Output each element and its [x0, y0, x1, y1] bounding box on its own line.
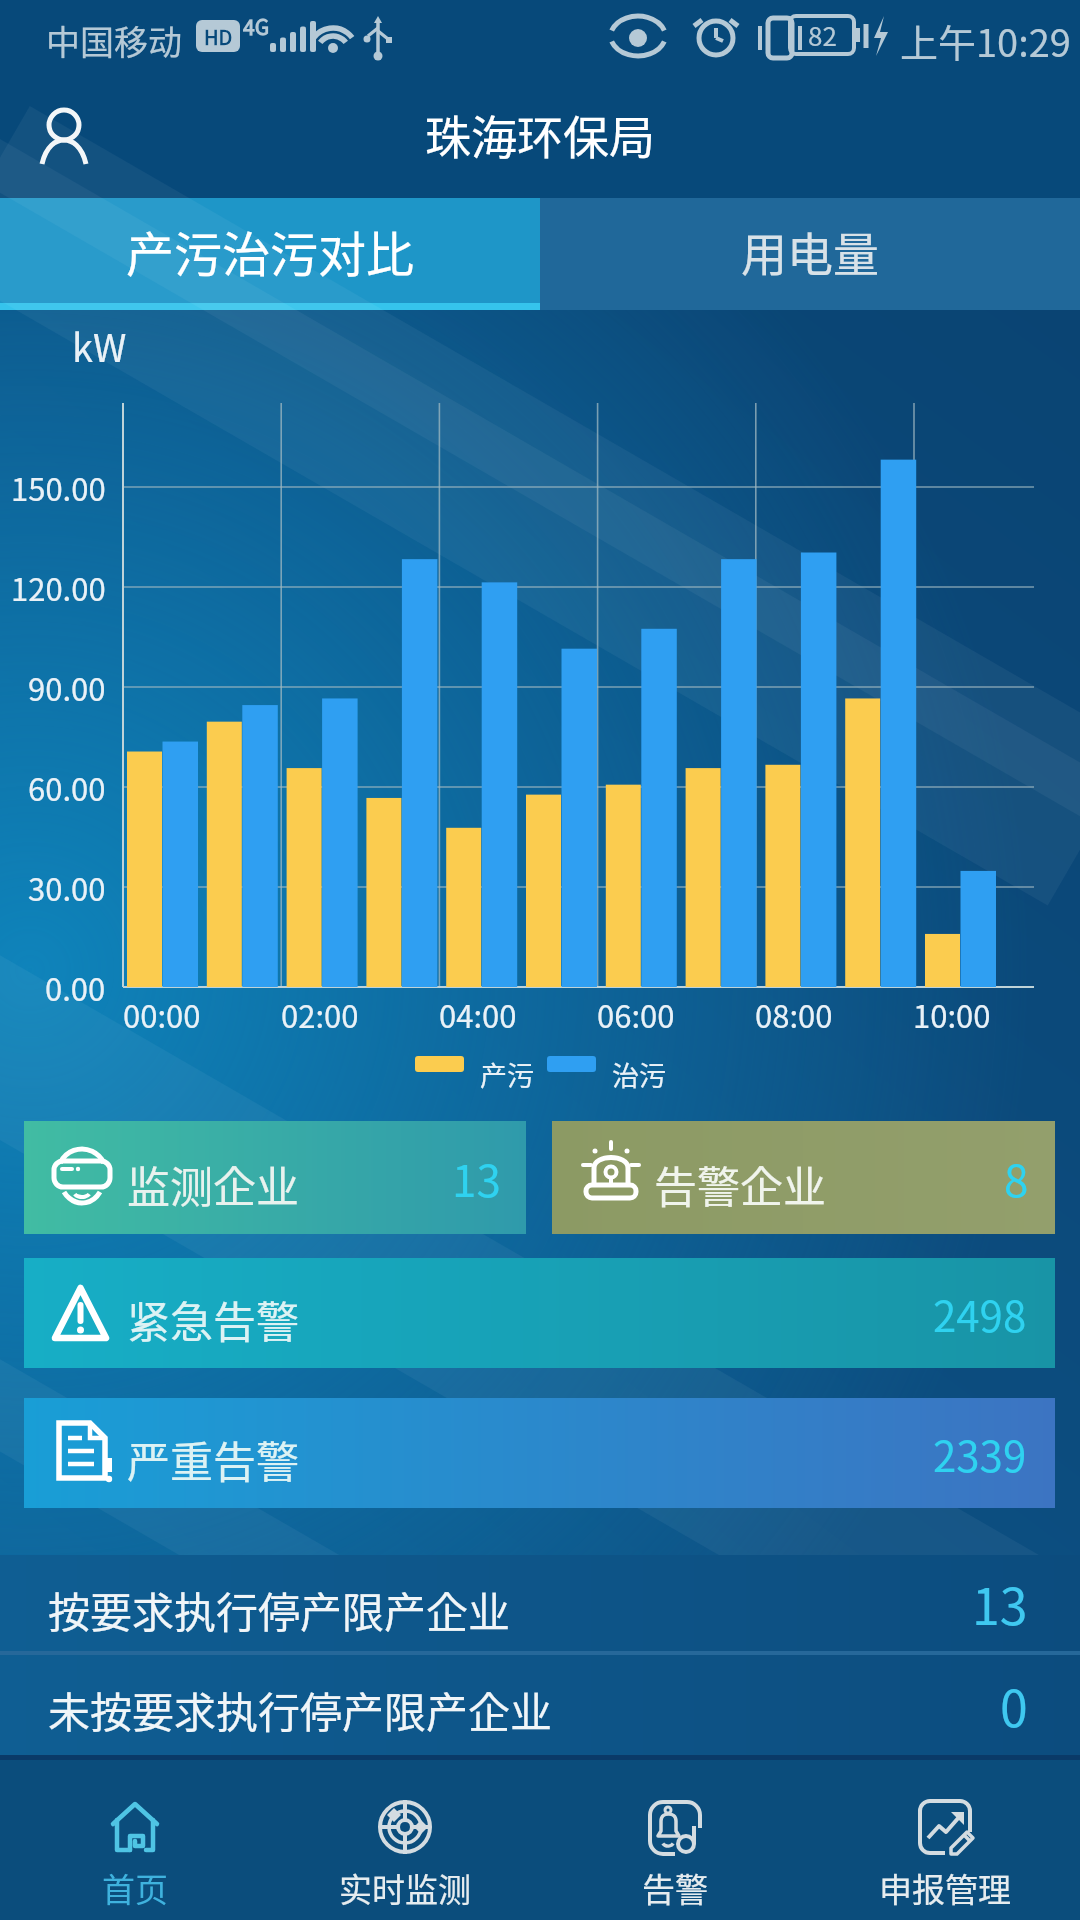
staticText: 按要求执行停产限产企业 [48, 1579, 511, 1640]
staticText: 30.00 [28, 865, 106, 909]
staticText: 产污 [480, 1055, 534, 1094]
staticText: 00:00 [123, 992, 201, 1036]
staticText: 13 [452, 1146, 501, 1210]
staticText: 82 [808, 16, 837, 54]
button[interactable]: 告警企业 [552, 1121, 1055, 1234]
staticText: 60.00 [28, 765, 106, 809]
staticText: 8 [1004, 1146, 1029, 1210]
button[interactable] [40, 108, 90, 166]
staticText: 2339 [933, 1423, 1027, 1484]
button[interactable]: 产污治污对比 [0, 198, 540, 310]
button[interactable]: 紧急告警 [24, 1258, 1055, 1368]
staticText: 治污 [612, 1055, 666, 1094]
button[interactable]: 用电量 [540, 198, 1080, 310]
staticText: 首页 [102, 1864, 168, 1912]
button[interactable]: 告警 [540, 1760, 810, 1920]
staticText: 08:00 [755, 992, 833, 1036]
staticText: 150.00 [11, 465, 106, 509]
staticText: 4G [243, 11, 270, 41]
button[interactable]: 按要求执行停产限产企业 [0, 1555, 1080, 1651]
staticText: 中国移动 [46, 16, 182, 65]
staticText: 紧急告警 [127, 1288, 299, 1350]
button[interactable]: 申报管理 [810, 1760, 1080, 1920]
staticText: 申报管理 [879, 1864, 1011, 1912]
staticText: 04:00 [439, 992, 517, 1036]
staticText: 产污治污对比 [126, 216, 415, 286]
staticText: 严重告警 [127, 1428, 299, 1490]
button[interactable]: 监测企业 [24, 1121, 526, 1234]
staticText: 02:00 [281, 992, 359, 1036]
staticText: 0.00 [45, 965, 106, 1009]
staticText: 0 [1000, 1669, 1028, 1741]
staticText: 用电量 [741, 218, 879, 285]
staticText: HD [204, 22, 233, 51]
button[interactable]: 严重告警 [24, 1398, 1055, 1508]
staticText: 2498 [933, 1283, 1027, 1344]
staticText: 10:00 [913, 992, 991, 1036]
staticText: 未按要求执行停产限产企业 [48, 1679, 553, 1740]
staticText: 珠海环保局 [425, 101, 655, 168]
staticText: 告警企业 [654, 1153, 826, 1215]
button[interactable]: 未按要求执行停产限产企业 [0, 1655, 1080, 1755]
button[interactable]: 首页 [0, 1760, 270, 1920]
staticText: 120.00 [11, 565, 106, 609]
staticText: 上午10:29 [900, 13, 1071, 68]
staticText: 实时监测 [339, 1864, 471, 1912]
staticText: 06:00 [597, 992, 675, 1036]
staticText: 监测企业 [127, 1153, 299, 1215]
staticText: kW [72, 318, 127, 373]
button[interactable]: 实时监测 [270, 1760, 540, 1920]
staticText: 告警 [642, 1864, 708, 1912]
staticText: 13 [972, 1567, 1028, 1639]
staticText: 90.00 [28, 665, 106, 709]
